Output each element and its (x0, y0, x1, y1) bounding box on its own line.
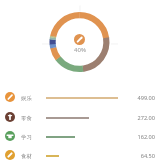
button[interactable]: 娱乐 category (74, 34, 85, 45)
button[interactable]: 学习 (0, 126, 160, 145)
staticText: 食材 (21, 153, 32, 160)
staticText: 64.50 (127, 152, 155, 160)
staticText: 162.00 (127, 133, 155, 141)
staticText: 272.00 (127, 114, 155, 122)
button[interactable]: 娱乐 (0, 87, 160, 106)
button[interactable]: 零食 (0, 107, 160, 126)
staticText: 零食 (21, 115, 32, 122)
staticText: 学习 (21, 134, 32, 141)
staticText: 499.00 (127, 94, 155, 102)
button[interactable]: 食材 (0, 145, 160, 160)
staticText: 40% (70, 46, 90, 54)
staticText: 娱乐 (21, 95, 32, 102)
